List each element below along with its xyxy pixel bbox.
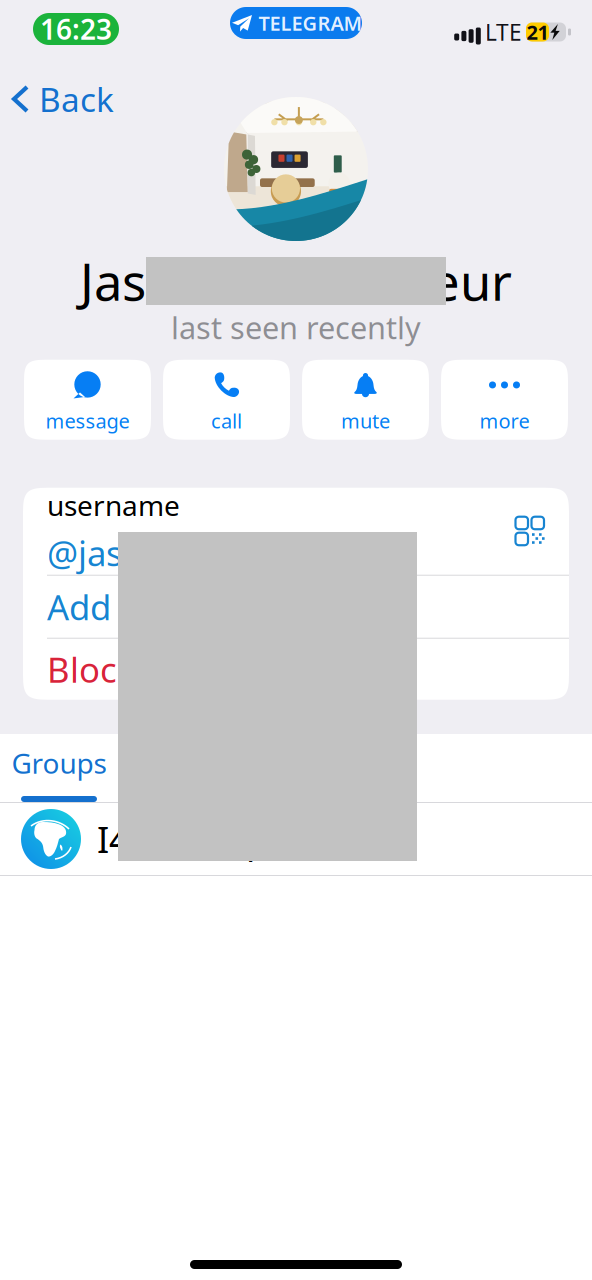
staticText: Back <box>39 77 114 121</box>
button[interactable]: call <box>163 360 290 440</box>
staticText: call <box>211 407 242 434</box>
staticText: @jasminebeau <box>47 530 286 576</box>
button[interactable]: message <box>24 360 151 440</box>
staticText: 16:23 <box>40 10 112 48</box>
staticText: I4C Group <box>97 815 268 863</box>
staticText: more <box>479 407 529 434</box>
staticText: Jasmine Beaufleur <box>80 247 512 315</box>
staticText: Block User <box>47 646 221 692</box>
button[interactable]: Back <box>0 84 114 114</box>
staticText: message <box>45 407 129 434</box>
staticText: TELEGRAM <box>258 10 362 36</box>
staticText: 21 <box>526 19 548 45</box>
button[interactable]: Add to contacts <box>23 576 569 638</box>
button[interactable]: I4C Group <box>0 803 592 875</box>
button[interactable]: username <box>23 488 569 575</box>
staticText: Groups <box>11 744 106 782</box>
button[interactable]: Block User <box>23 639 569 700</box>
staticText: mute <box>341 407 390 434</box>
button[interactable]: Groups <box>1 734 117 802</box>
button[interactable]: mute <box>302 360 429 440</box>
staticText: last seen recently <box>171 307 421 348</box>
staticText: Add to contacts <box>47 584 301 630</box>
staticText: username <box>47 487 180 524</box>
staticText: LTE <box>485 17 522 47</box>
button[interactable]: more <box>441 360 568 440</box>
